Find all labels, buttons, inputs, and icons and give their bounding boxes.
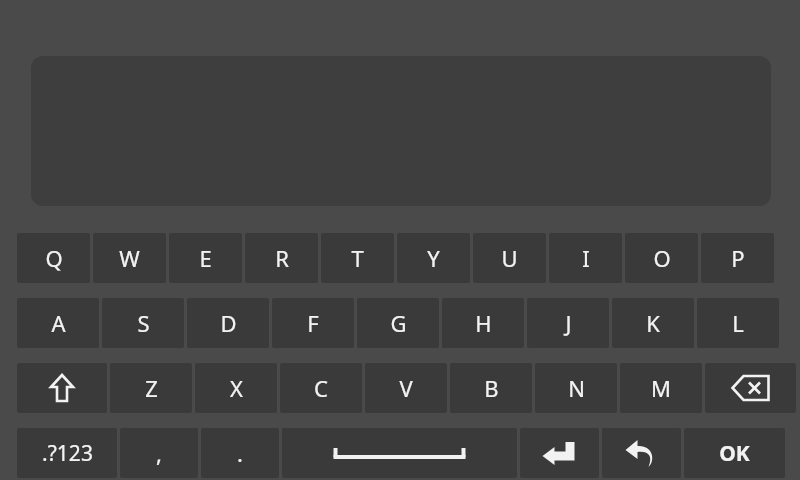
staticText: K xyxy=(646,308,660,338)
button[interactable]: J xyxy=(527,298,609,348)
button[interactable]: T xyxy=(321,233,394,283)
button[interactable]: S xyxy=(102,298,184,348)
staticText: T xyxy=(351,243,364,273)
staticText: OK xyxy=(719,439,750,468)
staticText: J xyxy=(565,308,572,338)
staticText: , xyxy=(156,438,162,468)
button[interactable]: R xyxy=(245,233,318,283)
button[interactable]: Q xyxy=(17,233,90,283)
button[interactable]: M xyxy=(620,363,702,413)
staticText: V xyxy=(399,373,413,403)
staticText: I xyxy=(582,243,590,273)
button[interactable]: . xyxy=(201,428,279,478)
button[interactable]: D xyxy=(187,298,269,348)
staticText: D xyxy=(220,308,237,338)
button[interactable]: A xyxy=(17,298,99,348)
button[interactable]: P xyxy=(701,233,774,283)
button[interactable]: O xyxy=(625,233,698,283)
button[interactable]: Backspace xyxy=(705,363,796,413)
button[interactable]: Enter xyxy=(520,428,599,478)
staticText: U xyxy=(501,243,518,273)
staticText: S xyxy=(137,308,150,338)
button[interactable]: V xyxy=(365,363,447,413)
button[interactable]: .?123 xyxy=(17,428,117,478)
staticText: B xyxy=(484,373,499,403)
button[interactable]: N xyxy=(535,363,617,413)
staticText: L xyxy=(732,308,744,338)
staticText: Z xyxy=(145,373,158,403)
staticText: . xyxy=(237,438,243,468)
staticText: F xyxy=(307,308,319,338)
staticText: N xyxy=(568,373,585,403)
button[interactable]: Shift xyxy=(17,363,107,413)
staticText: Y xyxy=(427,243,440,273)
staticText: Q xyxy=(45,243,63,273)
staticText: W xyxy=(119,243,140,273)
staticText: G xyxy=(390,308,407,338)
button[interactable]: I xyxy=(549,233,622,283)
staticText: A xyxy=(51,308,66,338)
button[interactable]: H xyxy=(442,298,524,348)
button[interactable]: Undo xyxy=(602,428,681,478)
button[interactable]: C xyxy=(280,363,362,413)
button[interactable]: K xyxy=(612,298,694,348)
staticText: O xyxy=(653,243,671,273)
button[interactable]: Z xyxy=(110,363,192,413)
staticText: P xyxy=(731,243,745,273)
button[interactable]: B xyxy=(450,363,532,413)
button[interactable]: X xyxy=(195,363,277,413)
button[interactable]: E xyxy=(169,233,242,283)
button[interactable]: Space xyxy=(282,428,517,478)
staticText: X xyxy=(230,373,243,403)
button[interactable]: Y xyxy=(397,233,470,283)
button[interactable]: F xyxy=(272,298,354,348)
staticText: E xyxy=(199,243,212,273)
button[interactable]: OK xyxy=(684,428,785,478)
button[interactable]: L xyxy=(697,298,779,348)
staticText: H xyxy=(475,308,492,338)
button[interactable]: G xyxy=(357,298,439,348)
staticText: M xyxy=(651,373,671,403)
button[interactable]: U xyxy=(473,233,546,283)
button[interactable]: W xyxy=(93,233,166,283)
staticText: C xyxy=(314,373,328,403)
staticText: .?123 xyxy=(42,439,93,468)
staticText: R xyxy=(275,243,289,273)
button[interactable]: , xyxy=(120,428,198,478)
